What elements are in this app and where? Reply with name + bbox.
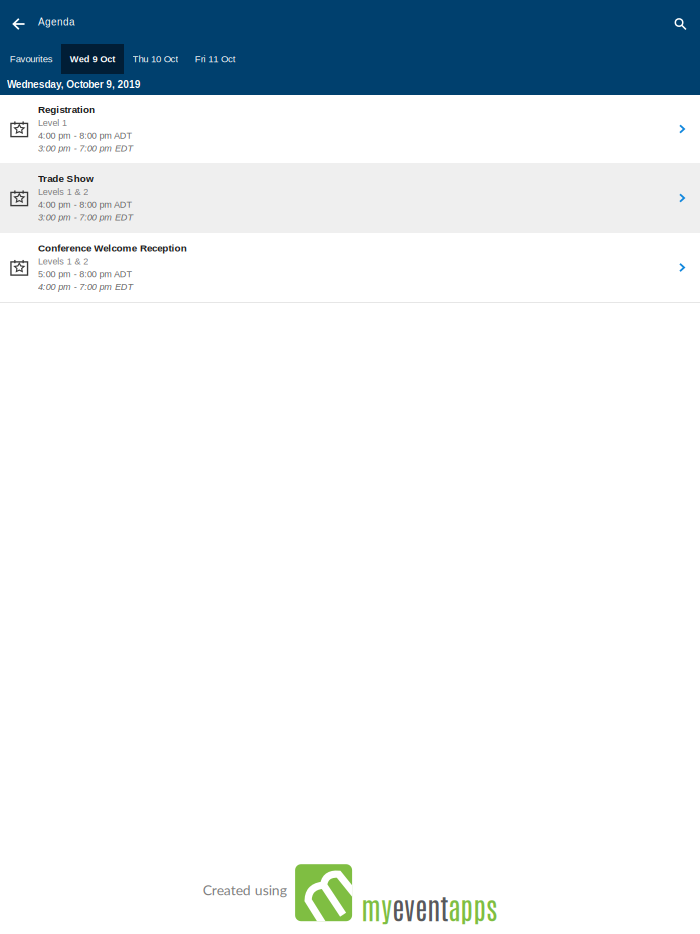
button[interactable]: Fri 11 Oct (187, 44, 244, 74)
button[interactable]: Back (0, 0, 38, 44)
staticText: my (361, 889, 392, 925)
staticText: event (392, 889, 448, 925)
staticText: Agenda (38, 16, 75, 28)
staticText: Thu 10 Oct (132, 54, 178, 64)
staticText: 3:00 pm - 7:00 pm EDT (38, 212, 134, 222)
staticText: Conference Welcome Reception (38, 243, 187, 254)
staticText: Levels 1 & 2 (38, 256, 88, 266)
staticText: Level 1 (38, 118, 67, 128)
staticText: Wed 9 Oct (70, 54, 115, 64)
button[interactable]: Trade Show (0, 163, 700, 233)
staticText: 5:00 pm - 8:00 pm ADT (38, 269, 133, 279)
staticText: 4:00 pm - 8:00 pm ADT (38, 130, 133, 141)
staticText: 3:00 pm - 7:00 pm EDT (38, 143, 134, 153)
button[interactable]: Favourites (1, 44, 61, 74)
staticText: Trade Show (38, 173, 94, 184)
staticText: Levels 1 & 2 (38, 187, 88, 197)
staticText: 4:00 pm - 7:00 pm EDT (38, 282, 134, 292)
button[interactable]: Wed 9 Oct (61, 44, 124, 74)
staticText: apps (448, 889, 497, 925)
staticText: Favourites (10, 54, 53, 64)
staticText: Created using (203, 881, 287, 898)
staticText: Registration (38, 104, 95, 115)
staticText: Fri 11 Oct (195, 54, 236, 64)
button[interactable]: Conference Welcome Reception (0, 233, 700, 302)
button[interactable]: Search (661, 0, 700, 44)
staticText: Wednesday, October 9, 2019 (7, 79, 141, 90)
button[interactable]: Registration (0, 95, 700, 163)
staticText: 4:00 pm - 8:00 pm ADT (38, 199, 133, 210)
button[interactable]: Thu 10 Oct (124, 44, 187, 74)
